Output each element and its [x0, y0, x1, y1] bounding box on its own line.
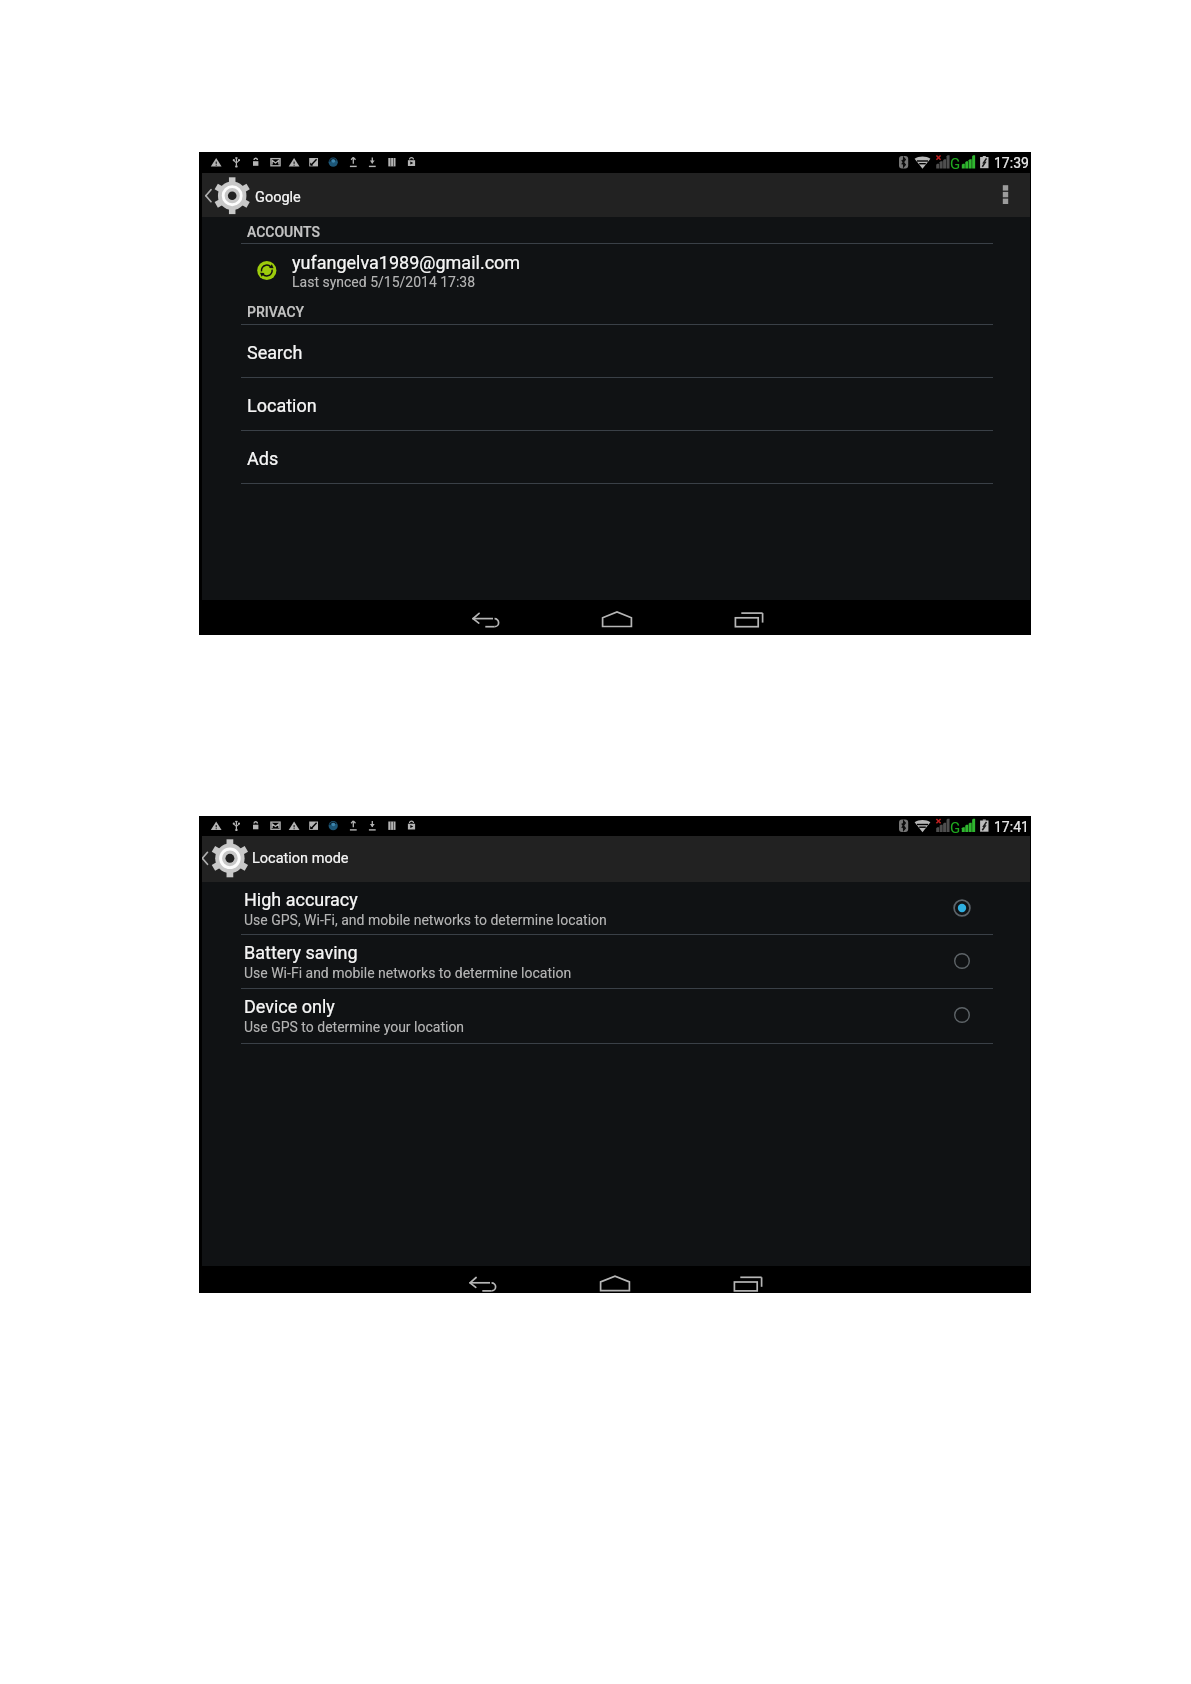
button[interactable]: Recent apps	[717, 600, 781, 635]
button[interactable]: Location	[199, 378, 1031, 431]
button[interactable]: Search	[199, 325, 1031, 378]
button[interactable]: Battery saving	[952, 951, 972, 971]
staticText: ACCOUNTS	[247, 224, 320, 240]
staticText: Battery saving	[244, 942, 358, 963]
staticText: Location mode	[252, 850, 349, 867]
button[interactable]: Device only	[199, 989, 1031, 1044]
button[interactable]: Device only	[952, 1005, 972, 1025]
staticText: PRIVACY	[247, 304, 305, 320]
button[interactable]: Navigate up	[199, 836, 447, 882]
staticText: Use GPS to determine your location	[244, 1019, 465, 1035]
button[interactable]: Back	[454, 600, 518, 635]
button[interactable]: Home	[585, 600, 649, 635]
button[interactable]: Back	[451, 1266, 515, 1293]
staticText: Last synced 5/15/2014 17:38	[292, 274, 476, 290]
staticText: G	[950, 819, 961, 837]
staticText: Device only	[244, 996, 335, 1017]
button[interactable]: Recent apps	[716, 1266, 780, 1293]
staticText: yufangelva1989@gmail.com	[292, 252, 521, 273]
staticText: 17:39	[994, 155, 1029, 171]
button[interactable]: More options	[987, 173, 1031, 217]
staticText: Use GPS, Wi-Fi, and mobile networks to d…	[244, 912, 607, 928]
staticText: Search	[247, 342, 303, 363]
staticText: 17:41	[994, 819, 1029, 835]
staticText: Location	[247, 395, 317, 416]
button[interactable]: Navigate up	[199, 173, 447, 217]
staticText: G	[950, 155, 961, 173]
button[interactable]: Battery saving	[199, 935, 1031, 989]
button[interactable]: Home	[583, 1266, 647, 1293]
button[interactable]: Ads	[199, 431, 1031, 484]
button[interactable]: High accuracy	[199, 882, 1031, 935]
staticText: Use Wi-Fi and mobile networks to determi…	[244, 965, 572, 981]
staticText: High accuracy	[244, 889, 358, 910]
staticText: Ads	[247, 448, 279, 469]
staticText: Google	[255, 189, 301, 206]
button[interactable]: High accuracy	[952, 898, 972, 918]
button[interactable]: yufangelva1989@gmail.com	[199, 244, 1031, 298]
